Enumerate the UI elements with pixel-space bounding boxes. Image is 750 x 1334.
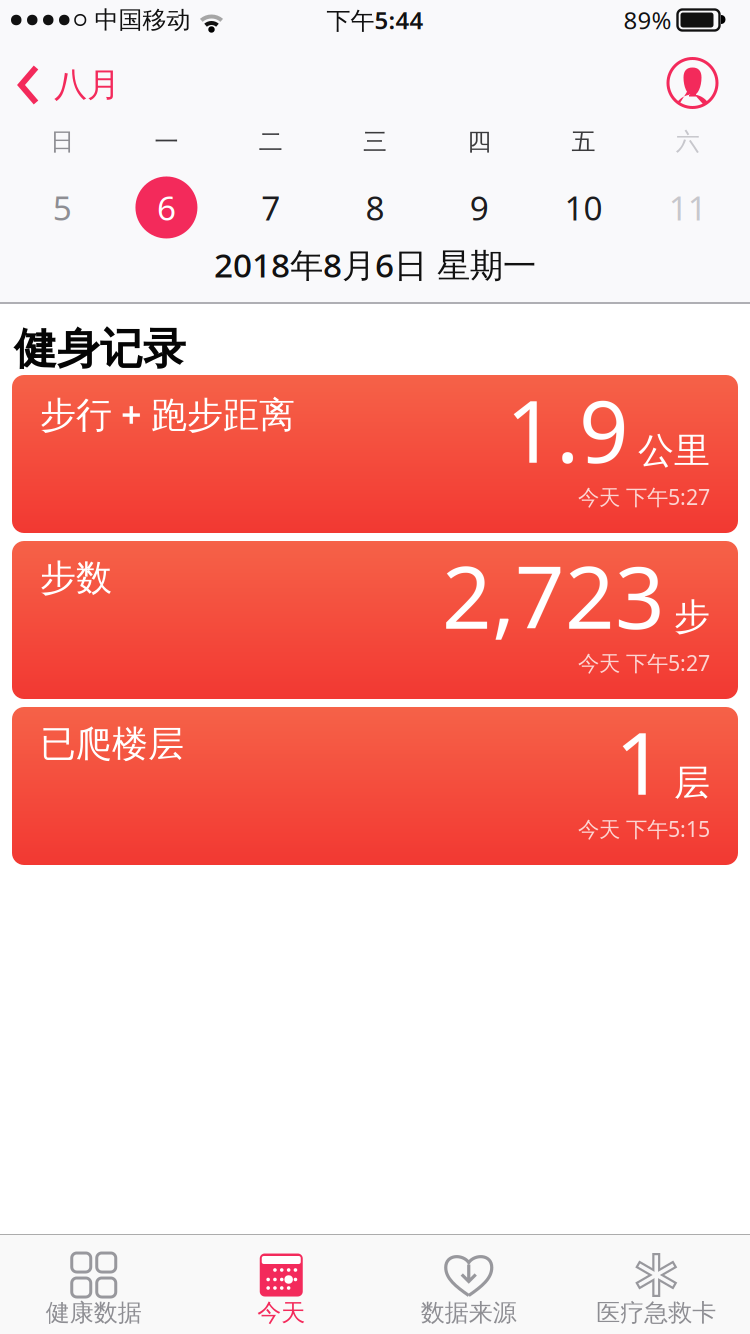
button[interactable]: 六 [636,127,740,238]
staticText: 今天 下午5:27 [578,483,710,511]
staticText: 6 [157,185,176,230]
button[interactable]: 今天 [187,1252,375,1327]
staticText: 公里 [638,429,710,473]
staticText: 医疗急救卡 [596,1298,716,1327]
button[interactable]: 医疗急救卡 [562,1252,750,1327]
button[interactable]: 三 [323,127,427,238]
staticText: 健康数据 [46,1298,142,1327]
button[interactable]: 八月 [18,58,120,105]
staticText: 数据来源 [421,1298,517,1327]
staticText: 三 [363,127,387,156]
staticText: 一 [154,127,178,156]
staticText: 9 [470,185,489,230]
button[interactable]: 一 [114,127,219,238]
staticText: 四 [467,127,491,156]
staticText: 89% [623,4,671,36]
button[interactable] [668,58,717,107]
staticText: 日 [50,127,74,156]
staticText: 层 [674,761,710,805]
staticText: 中国移动 [94,5,190,35]
staticText: 步数 [40,556,112,600]
button[interactable]: 步行 + 跑步距离 [12,375,738,533]
button[interactable]: 二 [219,127,323,238]
staticText: 六 [676,127,700,156]
staticText: 步 [674,595,710,639]
staticText: 11 [669,185,707,230]
staticText: 1.9 [506,372,629,487]
staticText: 已爬楼层 [40,722,184,766]
button[interactable]: 步数 [12,541,738,699]
button[interactable]: 已爬楼层 [12,707,738,865]
staticText: 7 [261,185,280,230]
button[interactable]: 数据来源 [375,1252,562,1327]
staticText: 5 [53,185,72,230]
staticText: 今天 [257,1298,305,1327]
staticText: 下午5:44 [326,4,423,36]
button[interactable]: 四 [427,127,531,238]
staticText: 今天 下午5:27 [578,649,710,677]
staticText: 健身记录 [14,323,186,375]
button[interactable]: 健康数据 [0,1252,187,1327]
staticText: 2018年8月6日 星期一 [214,242,536,287]
staticText: 1 [615,704,665,819]
staticText: 八月 [54,64,120,105]
staticText: 二 [259,127,283,156]
staticText: 步行 + 跑步距离 [40,390,295,438]
button[interactable]: 五 [531,127,636,238]
staticText: 8 [365,185,384,230]
staticText: 2,723 [442,538,665,653]
staticText: 10 [565,185,603,230]
staticText: 五 [572,127,596,156]
button[interactable]: 日 [10,127,114,238]
staticText: 今天 下午5:15 [578,815,710,843]
